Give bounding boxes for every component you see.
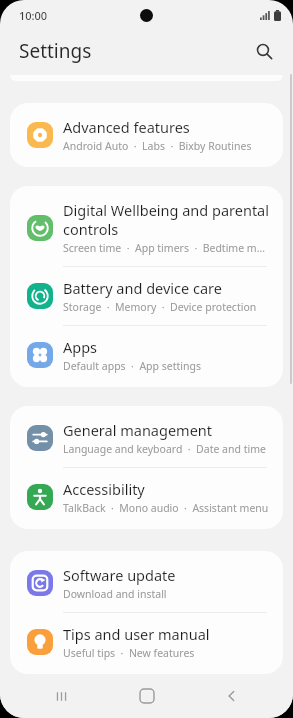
button[interactable]: Accessibility — [10, 468, 283, 526]
staticText: Advanced features — [63, 117, 190, 137]
button[interactable]: Software update — [10, 554, 283, 612]
staticText: Language and keyboard · Date and time — [63, 442, 266, 456]
staticText: Accessibility — [63, 479, 145, 499]
staticText: Default apps · App settings — [63, 359, 201, 373]
button[interactable]: Apps — [10, 326, 283, 384]
staticText: Battery and device care — [63, 278, 222, 298]
staticText: General management — [63, 420, 213, 440]
staticText: Tips and user manual — [63, 624, 210, 644]
staticText: Digital Wellbeing and parental controls — [63, 200, 269, 239]
button[interactable]: Advanced features — [10, 106, 283, 164]
button[interactable]: General management — [10, 409, 283, 467]
staticText: Screen time · App timers · Bedtime mode — [63, 241, 269, 255]
button[interactable]: Tips and user manual — [10, 613, 283, 671]
staticText: Useful tips · New features — [63, 646, 195, 660]
button[interactable]: Back — [208, 674, 256, 718]
staticText: Settings — [19, 38, 92, 64]
staticText: 10:00 — [19, 8, 48, 23]
button[interactable]: Battery and device care — [10, 267, 283, 325]
staticText: Android Auto · Labs · Bixby Routines — [63, 139, 252, 153]
staticText: Software update — [63, 565, 176, 585]
staticText: Storage · Memory · Device protection — [63, 300, 257, 314]
staticText: Download and install — [63, 587, 167, 601]
button[interactable]: Home — [123, 674, 171, 718]
staticText: TalkBack · Mono audio · Assistant menu — [63, 501, 269, 515]
button[interactable]: Recents — [37, 674, 85, 718]
button[interactable]: Digital Wellbeing and parental controls — [10, 189, 283, 266]
staticText: Apps — [63, 337, 98, 357]
button[interactable]: Search — [247, 34, 281, 68]
